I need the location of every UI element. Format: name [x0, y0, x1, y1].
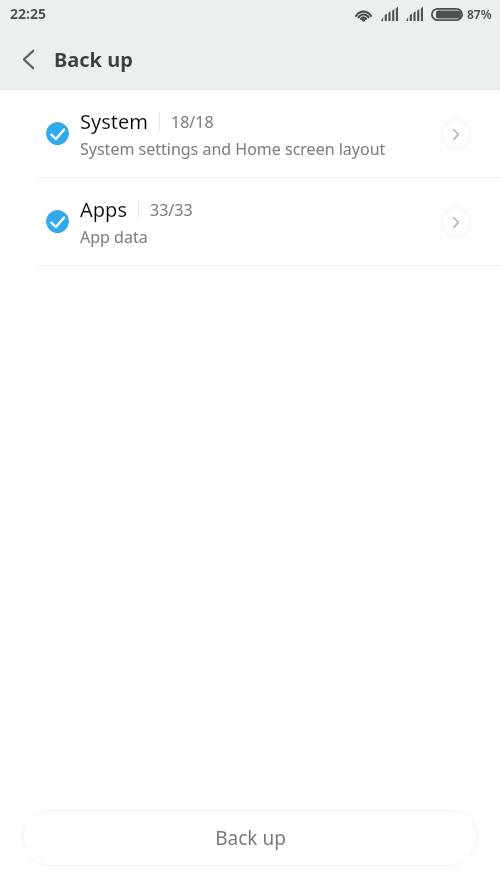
staticText: Back up [215, 825, 286, 851]
staticText: Apps [80, 196, 127, 223]
staticText: System settings and Home screen layout [80, 138, 386, 160]
staticText: 22:25 [10, 4, 46, 23]
button[interactable]: Apps selected [0, 178, 500, 265]
button[interactable]: Details [441, 119, 471, 149]
staticText: 18/18 [171, 111, 214, 133]
staticText: Back up [54, 46, 133, 73]
button[interactable]: Details [441, 207, 471, 237]
button[interactable]: Back up [22, 810, 478, 866]
button[interactable]: Apps selected [46, 210, 69, 233]
staticText: System [80, 108, 148, 135]
button[interactable]: Back [7, 37, 49, 79]
staticText: App data [80, 226, 148, 248]
button[interactable]: System selected [46, 122, 69, 145]
staticText: 33/33 [150, 199, 193, 221]
staticText: 87% [467, 6, 492, 22]
button[interactable]: System selected [0, 90, 500, 177]
